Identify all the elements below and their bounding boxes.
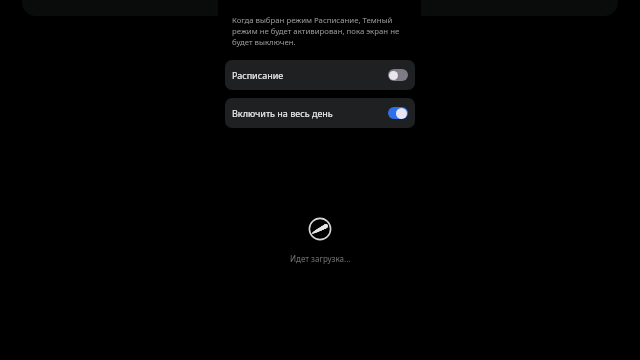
button[interactable]: Выключить: Включить на весь день	[388, 107, 408, 119]
button[interactable]: Расписание	[225, 60, 415, 90]
other: Идет загрузка	[307, 216, 333, 242]
staticText: Расписание	[232, 69, 284, 81]
button[interactable]: Включить на весь день	[225, 98, 415, 128]
staticText: Когда выбран режим Расписание, Темный ре…	[232, 15, 407, 48]
staticText: Идет загрузка...	[290, 253, 351, 264]
staticText: Включить на весь день	[232, 107, 333, 119]
button[interactable]: Включить: Расписание	[388, 69, 408, 81]
